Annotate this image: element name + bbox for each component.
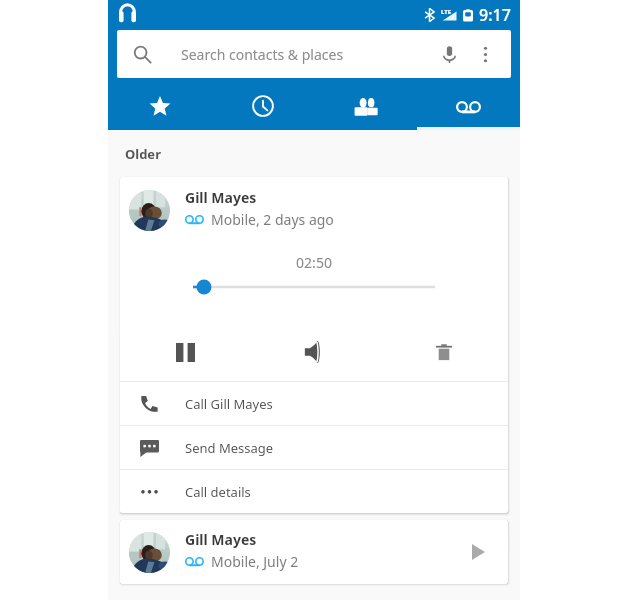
staticText: 02:50 [120, 253, 508, 272]
staticText: 9:17 [479, 4, 511, 26]
staticText: Call Gill Mayes [185, 395, 273, 413]
button[interactable]: Voicemail [417, 85, 520, 130]
button[interactable]: Speaker [250, 334, 379, 370]
button[interactable]: Voice search [436, 41, 462, 67]
button[interactable]: Seek [120, 277, 508, 297]
button[interactable]: Pause [120, 334, 250, 370]
button[interactable]: Call details [120, 470, 508, 513]
button[interactable]: More options [472, 41, 498, 67]
button[interactable]: Favorites [108, 85, 211, 130]
button[interactable]: Send Message [120, 426, 508, 469]
staticText: LTE [441, 8, 452, 16]
staticText: Gill Mayes [185, 188, 257, 207]
button[interactable]: Play [457, 531, 499, 573]
staticText: Call details [185, 483, 251, 501]
button[interactable]: Search contacts & places [117, 30, 511, 78]
staticText: Mobile, July 2 [211, 552, 299, 571]
button[interactable]: Delete [379, 334, 508, 370]
button[interactable]: Gill Mayes [120, 520, 508, 584]
staticText: Send Message [185, 439, 274, 457]
staticText: Gill Mayes [185, 530, 257, 549]
button[interactable]: Contacts [314, 85, 417, 130]
button[interactable]: Recents [211, 85, 314, 130]
staticText: Mobile, 2 days ago [211, 210, 334, 229]
staticText: Search contacts & places [181, 45, 344, 64]
button[interactable]: Call Gill Mayes [120, 382, 508, 425]
staticText: Older [125, 145, 161, 163]
